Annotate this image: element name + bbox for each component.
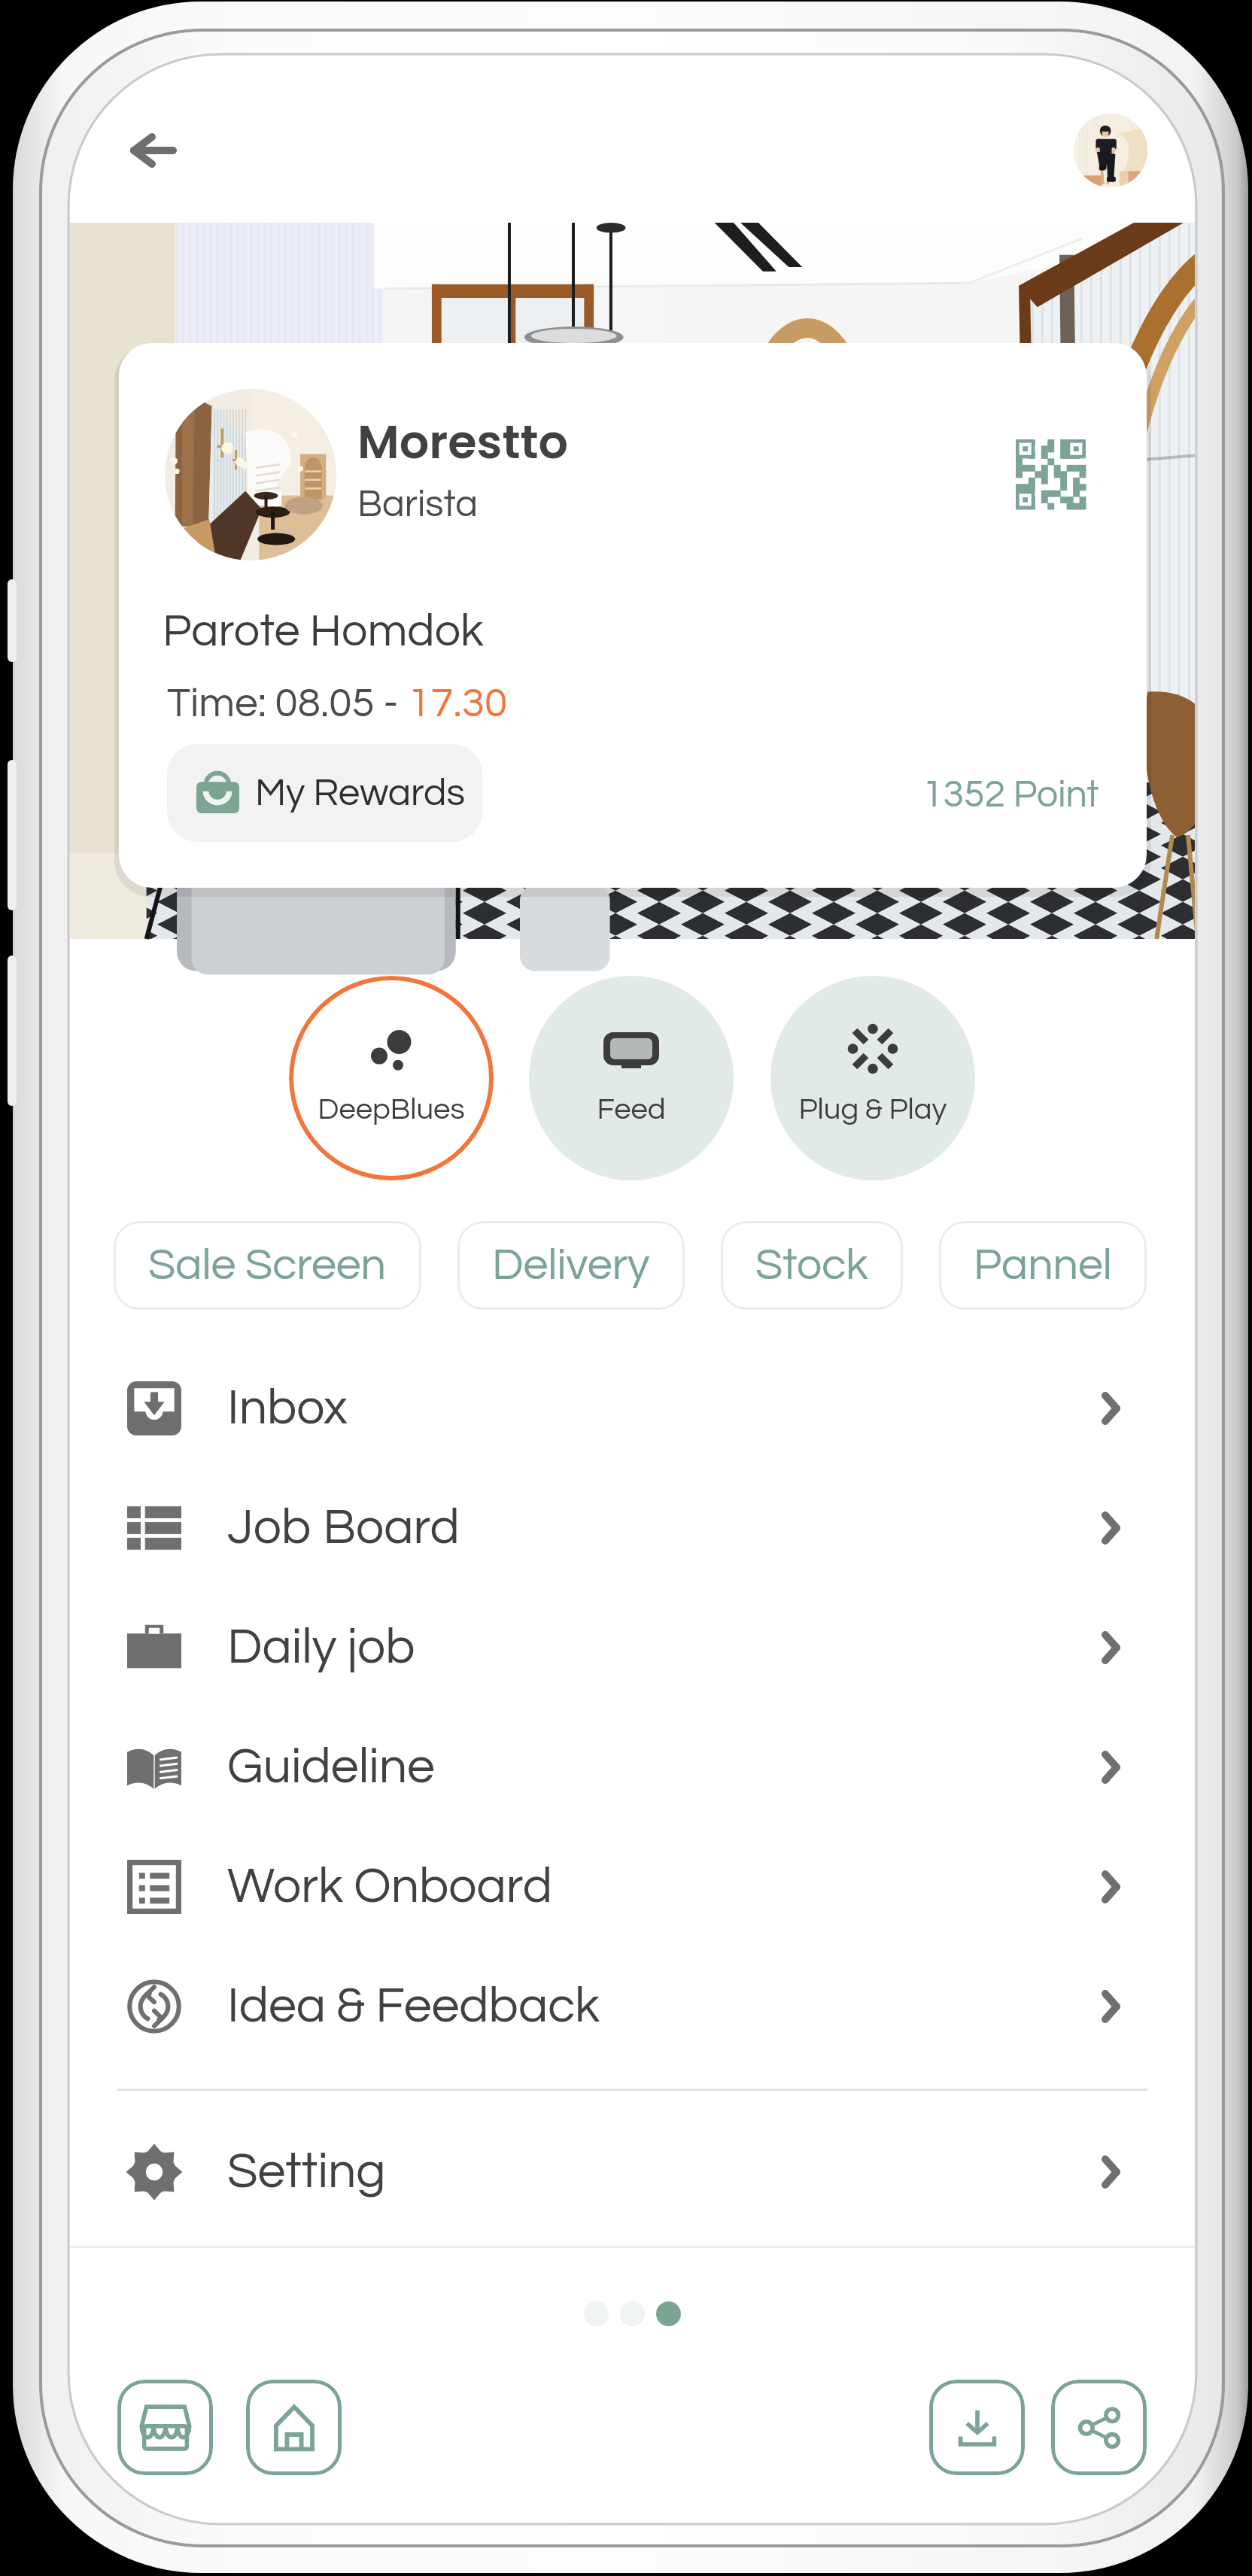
button[interactable]: Download [929,2380,1025,2475]
staticText: Morestto [357,409,569,475]
button[interactable]: Shop [117,2380,213,2475]
button[interactable]: Sale Screen [114,1221,421,1310]
staticText: Stock [755,1243,868,1289]
button[interactable]: Inbox [70,1348,1195,1468]
button[interactable]: Idea & Feedback [70,1946,1195,2066]
button[interactable]: Feed [529,976,734,1180]
button[interactable]: Profile [1074,114,1147,187]
staticText: Time: 08.05 - [167,682,408,725]
button[interactable]: Home [246,2380,342,2475]
button[interactable]: Share [1051,2380,1147,2475]
button[interactable]: Pannel [939,1221,1147,1310]
button[interactable]: Guideline [70,1707,1195,1827]
button[interactable]: DeepBlues [289,976,494,1180]
staticText: Sale Screen [148,1243,387,1289]
staticText: Barista [357,485,478,524]
staticText: Setting [227,2146,386,2198]
staticText: DeepBlues [289,1094,494,1125]
staticText: Plug & Play [770,1094,975,1125]
staticText: My Rewards [255,773,465,813]
staticText: Pannel [974,1243,1112,1289]
staticText: Inbox [227,1383,348,1434]
button[interactable]: Plug & Play [770,976,975,1180]
staticText: 1352 Point [922,776,1099,815]
button[interactable]: My Rewards [167,744,482,842]
staticText: Delivery [492,1243,650,1289]
staticText: Job Board [227,1502,460,1554]
button[interactable]: Work Onboard [70,1827,1195,1946]
staticText: Idea & Feedback [227,1981,600,2032]
staticText: 17.30 [408,682,508,725]
button[interactable]: Delivery [457,1221,685,1310]
button[interactable]: Back [112,109,195,192]
staticText: Work Onboard [227,1861,553,1912]
button[interactable]: Job Board [70,1468,1195,1587]
button[interactable]: Stock [721,1221,903,1310]
button[interactable]: Setting [70,2112,1195,2231]
staticText: Feed [529,1094,734,1125]
staticText: Daily job [227,1622,415,1673]
staticText: Parote Homdok [163,608,484,655]
button[interactable]: Daily job [70,1587,1195,1707]
staticText: Guideline [227,1742,435,1793]
